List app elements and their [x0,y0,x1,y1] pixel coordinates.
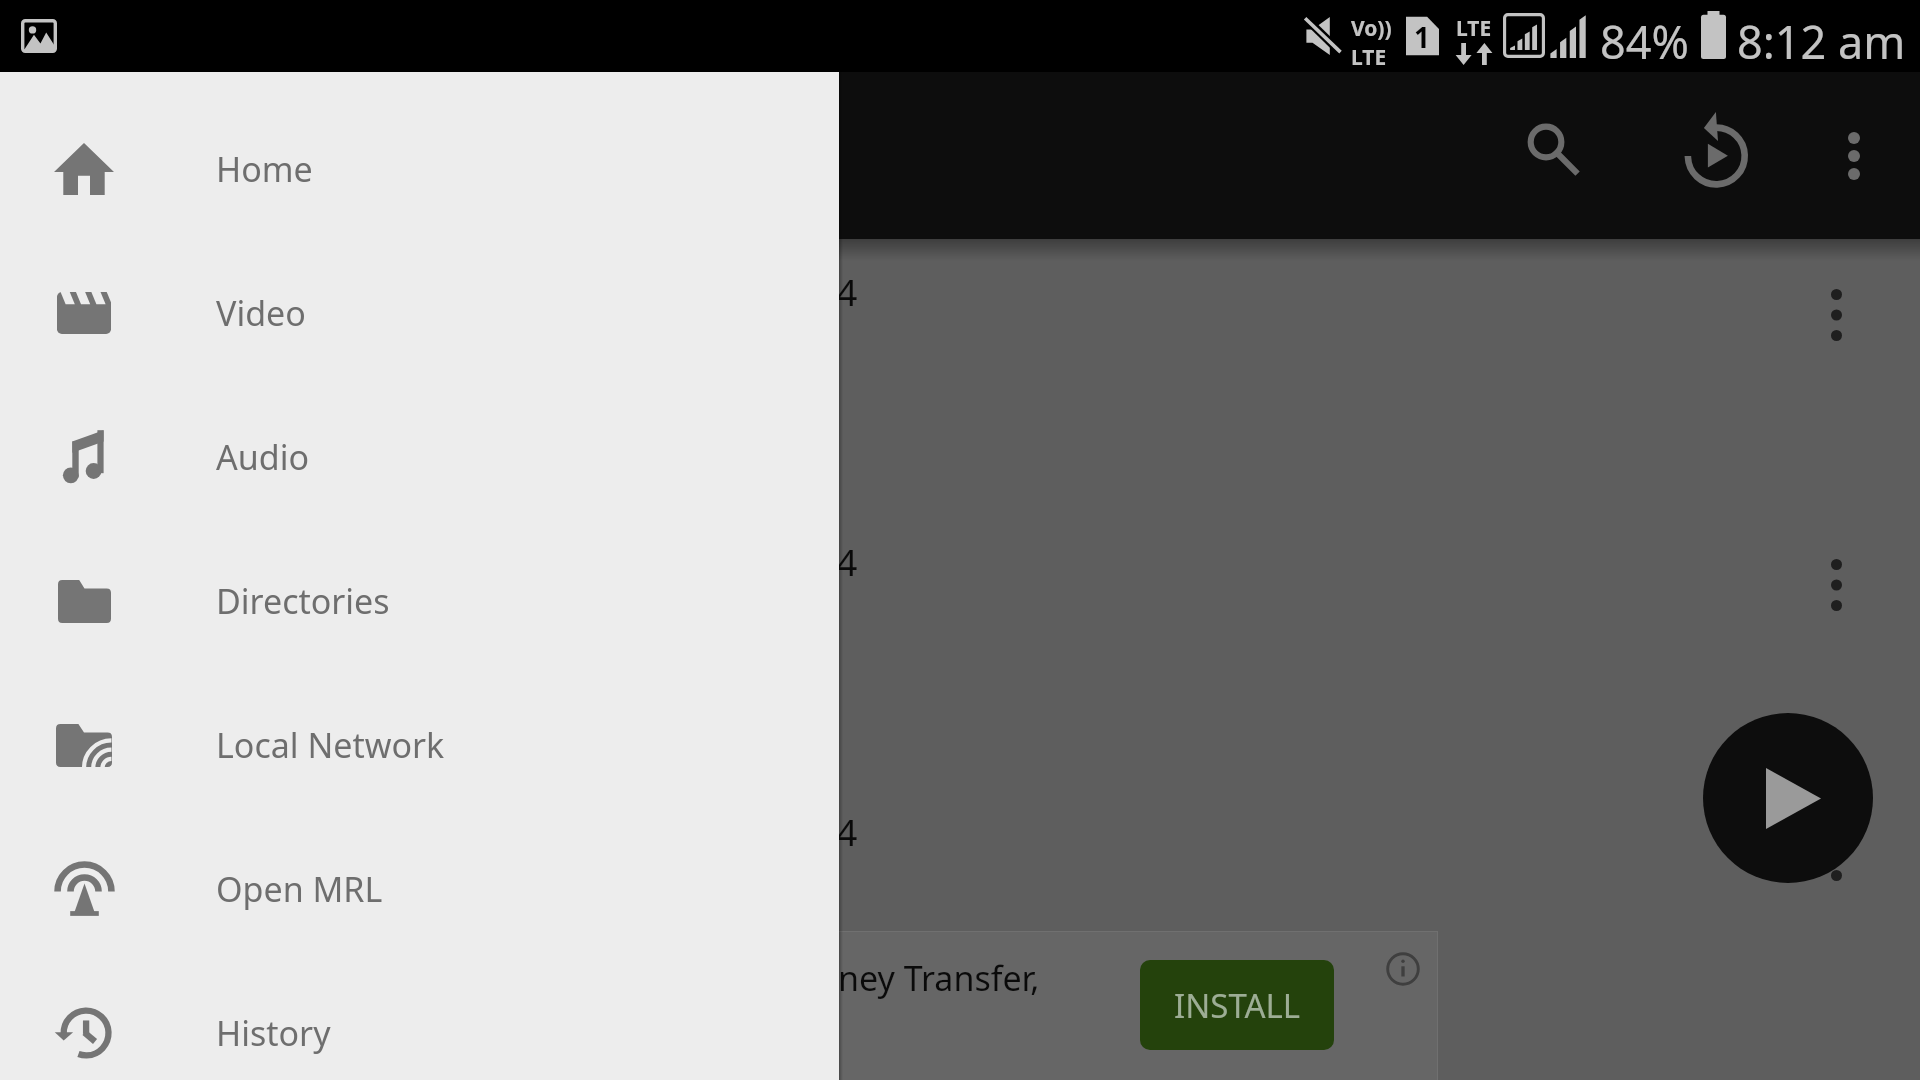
staticText: Big Buck Bunny 4 [555,806,858,856]
button[interactable]: Advertisement [0,931,1438,1080]
button[interactable]: History [0,961,839,1080]
staticText: Video [216,290,306,336]
staticText: Local Network [216,722,445,768]
button[interactable]: More options [1804,553,1868,617]
button[interactable]: Play [1703,713,1873,883]
button[interactable]: Resume playback [1682,110,1750,190]
staticText: Big Buck Bunny 4 [555,536,858,586]
staticText: LTE [1351,43,1387,72]
button[interactable]: INSTALL [1140,960,1334,1050]
staticText: Big Buck Bunny 4 [555,266,858,316]
button[interactable]: Ad information [1385,951,1421,987]
staticText: Home [216,146,313,192]
button[interactable]: Big Buck Bunny 4 [0,180,1920,450]
staticText: Directories [216,578,390,624]
staticText: Vo)) [1351,14,1392,43]
staticText: Fast, Safe Money Transfer, [626,955,1040,1001]
button[interactable]: Audio [0,385,839,529]
button[interactable]: Home [0,97,839,241]
staticText: 84% [1600,11,1689,72]
button[interactable]: Search [1526,122,1578,174]
button[interactable]: Big Buck Bunny 4 [0,720,1920,990]
button[interactable]: Big Buck Bunny 4 [0,450,1920,720]
staticText: History [216,1010,331,1056]
staticText: LTE [1456,14,1492,43]
staticText: 1 [1414,18,1431,56]
button[interactable]: More options [1804,283,1868,347]
button[interactable]: Open MRL [0,817,839,961]
button[interactable]: Video [0,241,839,385]
button[interactable]: Directories [0,529,839,673]
staticText: Open MRL [216,866,383,912]
button[interactable]: More options [1822,116,1886,196]
staticText: Audio [216,434,309,480]
staticText: 8:12 am [1737,11,1906,72]
staticText: INSTALL [1174,983,1301,1028]
button[interactable]: Local Network [0,673,839,817]
button[interactable]: More options [1804,823,1868,887]
